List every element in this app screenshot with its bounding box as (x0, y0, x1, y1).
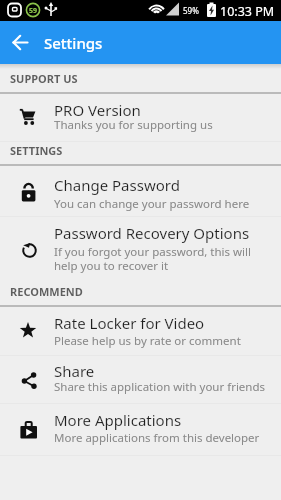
button[interactable]: PRO Version (0, 94, 281, 141)
button[interactable]: Share (0, 356, 281, 403)
staticText: You can change your password here (54, 196, 250, 212)
staticText: Share this application with your friends (54, 379, 266, 395)
staticText: 59 (29, 6, 38, 16)
staticText: Password Recovery Options (54, 223, 250, 243)
staticText: SETTINGS (10, 143, 63, 158)
staticText: RECOMMEND (10, 284, 83, 299)
staticText: SUPPORT US (10, 71, 78, 86)
staticText: Please help us by rate or comment (54, 333, 241, 349)
staticText: Rate Locker for Video (54, 313, 205, 333)
staticText: PRO Version (54, 100, 141, 120)
button[interactable]: Password Recovery Options (0, 217, 281, 277)
staticText: If you forgot your password, this will (54, 244, 252, 260)
staticText: More applications from this developer (54, 430, 260, 446)
staticText: Share (54, 361, 95, 381)
staticText: Thanks you for supporting us (54, 117, 213, 133)
staticText: 59% (183, 5, 199, 16)
button[interactable]: Rate Locker for Video (0, 307, 281, 355)
button[interactable]: More Applications (0, 404, 281, 455)
staticText: 10:33 PM (220, 3, 275, 20)
staticText: Settings (44, 33, 103, 53)
button[interactable]: Change Password (0, 166, 281, 216)
staticText: More Applications (54, 410, 182, 430)
staticText: help you to recover it (54, 258, 169, 274)
staticText: Change Password (54, 175, 180, 195)
button[interactable] (11, 35, 29, 53)
